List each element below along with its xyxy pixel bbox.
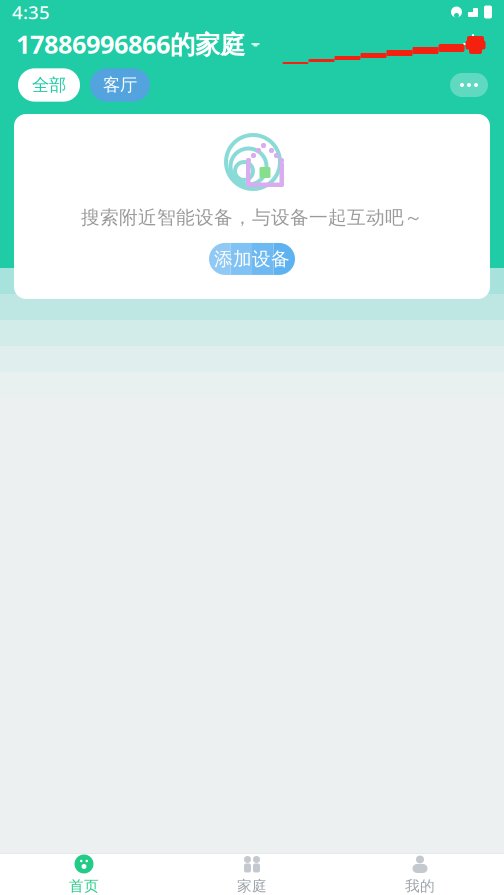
button[interactable]: 17886996866的家庭 (16, 21, 260, 67)
staticText: 我的 (405, 877, 435, 895)
button[interactable]: 家庭 (168, 854, 336, 895)
staticText: 客厅 (103, 74, 137, 96)
staticText: 17886996866的家庭 (16, 27, 245, 61)
staticText: 全部 (32, 74, 66, 96)
staticText: 添加设备 (214, 247, 290, 270)
staticText: 家庭 (237, 877, 267, 895)
button[interactable]: 添加设备 (209, 243, 295, 275)
button[interactable]: 我的 (336, 854, 504, 895)
button[interactable]: Add device (456, 27, 490, 61)
staticText: 4:35 (12, 0, 50, 24)
staticText: 首页 (69, 877, 99, 895)
button[interactable]: More options (450, 73, 488, 97)
button[interactable]: 客厅 (90, 68, 150, 102)
button[interactable]: 首页 (0, 854, 168, 895)
staticText: 搜索附近智能设备，与设备一起互动吧～ (81, 206, 423, 229)
button[interactable]: 全部 (18, 68, 80, 102)
